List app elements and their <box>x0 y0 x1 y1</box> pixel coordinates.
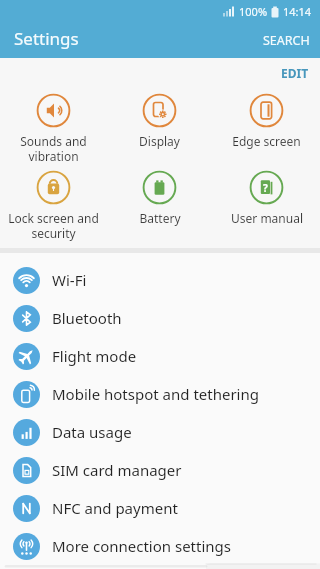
button[interactable]: Flight mode <box>0 337 320 375</box>
staticText: 14:14 <box>283 4 312 19</box>
button[interactable]: Edge screen <box>213 94 320 171</box>
button[interactable]: SIM card manager <box>0 451 320 489</box>
staticText: Flight mode <box>52 346 137 366</box>
staticText: ? <box>263 181 268 195</box>
button[interactable]: SEARCH <box>263 32 310 49</box>
staticText: Sounds and vibration <box>20 133 87 164</box>
staticText: 100% <box>239 4 268 19</box>
staticText: Wi-Fi <box>52 270 87 290</box>
button[interactable]: NFC and payment <box>0 489 320 527</box>
staticText: Lock screen and security <box>8 210 99 241</box>
staticText: Bluetooth <box>52 308 122 328</box>
staticText: Data usage <box>52 422 132 442</box>
staticText: NFC and payment <box>52 498 178 518</box>
button[interactable]: EDIT <box>281 65 309 81</box>
staticText: Settings <box>14 27 79 50</box>
button[interactable]: Lock screen and security <box>0 171 106 248</box>
staticText: More connection settings <box>52 536 231 556</box>
button[interactable]: Mobile hotspot and tethering <box>0 375 320 413</box>
button[interactable]: Wi-Fi <box>0 261 320 299</box>
button[interactable]: Battery <box>106 171 213 248</box>
staticText: User manual <box>231 210 303 226</box>
staticText: Mobile hotspot and tethering <box>52 384 259 404</box>
staticText: SIM card manager <box>52 460 182 480</box>
staticText: Battery <box>139 210 181 226</box>
staticText: Edge screen <box>232 133 301 149</box>
staticText: EDIT <box>281 65 309 81</box>
button[interactable]: ? <box>213 171 320 248</box>
button[interactable]: More connection settings <box>0 527 320 565</box>
button[interactable]: Sounds and vibration <box>0 94 106 171</box>
staticText: Display <box>139 133 180 149</box>
button[interactable]: Display <box>106 94 213 171</box>
button[interactable]: Bluetooth <box>0 299 320 337</box>
button[interactable]: Data usage <box>0 413 320 451</box>
staticText: SEARCH <box>263 32 310 49</box>
